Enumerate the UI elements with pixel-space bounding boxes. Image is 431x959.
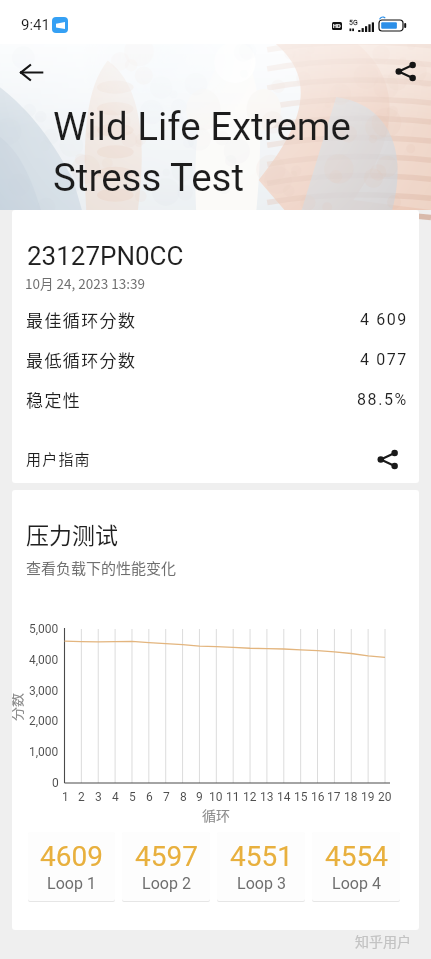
staticText: HD [333,23,341,29]
staticText: Stress Test [53,155,245,200]
staticText: 2 [78,790,85,804]
staticText: 最低循环分数 [26,347,137,372]
staticText: 10 [209,790,223,804]
staticText: 5G [349,19,358,27]
staticText: Loop 3 [237,874,286,893]
staticText: 6 [146,790,153,804]
button[interactable]: 4597 [122,832,210,901]
staticText: 2,000 [29,714,59,728]
staticText: 分数 [12,693,26,721]
staticText: 17 [327,790,341,804]
staticText: 4554 [325,840,388,873]
staticText: 12 [243,790,257,804]
staticText: 9 [196,790,203,804]
staticText: 4 609 [360,310,408,329]
button[interactable]: 4551 [217,832,305,901]
staticText: Loop 1 [47,874,96,893]
button[interactable]: 用户指南 [12,433,419,483]
staticText: 4609 [40,840,103,873]
staticText: 13 [260,790,274,804]
staticText: Loop 4 [332,874,381,893]
staticText: 14 [277,790,291,804]
staticText: 0 [52,776,59,790]
staticText: 9:41 [21,16,50,34]
staticText: 19 [361,790,375,804]
staticText: 1 [62,790,69,804]
staticText: 5,000 [29,622,59,636]
staticText: 4551 [230,840,293,873]
staticText: 8 [180,790,187,804]
staticText: 18 [344,790,358,804]
staticText: 4597 [135,840,198,873]
staticText: 10月 24, 2023 13:39 [25,273,145,293]
staticText: 查看负载下的性能变化 [26,557,177,579]
staticText: 3 [95,790,102,804]
staticText: 88.5% [357,390,408,409]
staticText: 4 077 [360,350,408,369]
staticText: 3,000 [29,684,59,698]
staticText: 15 [294,790,308,804]
staticText: 4,000 [29,653,59,667]
staticText: 4 [112,790,119,804]
staticText: 20 [378,790,392,804]
staticText: Wild Life Extreme [53,104,351,149]
staticText: 稳定性 [26,387,82,412]
staticText: 知乎用户 [355,931,411,951]
staticText: Loop 2 [142,874,191,893]
staticText: 5 [129,790,136,804]
button[interactable]: Share [382,48,428,94]
staticText: 7 [163,790,170,804]
staticText: 1,000 [29,745,59,759]
button[interactable]: 4609 [28,832,115,901]
button[interactable]: Back [8,49,54,95]
staticText: 16 [311,790,325,804]
staticText: 23127PN0CC [27,241,184,271]
staticText: 压力测试 [26,517,118,550]
staticText: 用户指南 [26,448,91,470]
staticText: 循环 [202,805,230,825]
staticText: 最佳循环分数 [26,307,137,332]
staticText: 11 [226,790,240,804]
button[interactable]: 4554 [312,832,400,901]
